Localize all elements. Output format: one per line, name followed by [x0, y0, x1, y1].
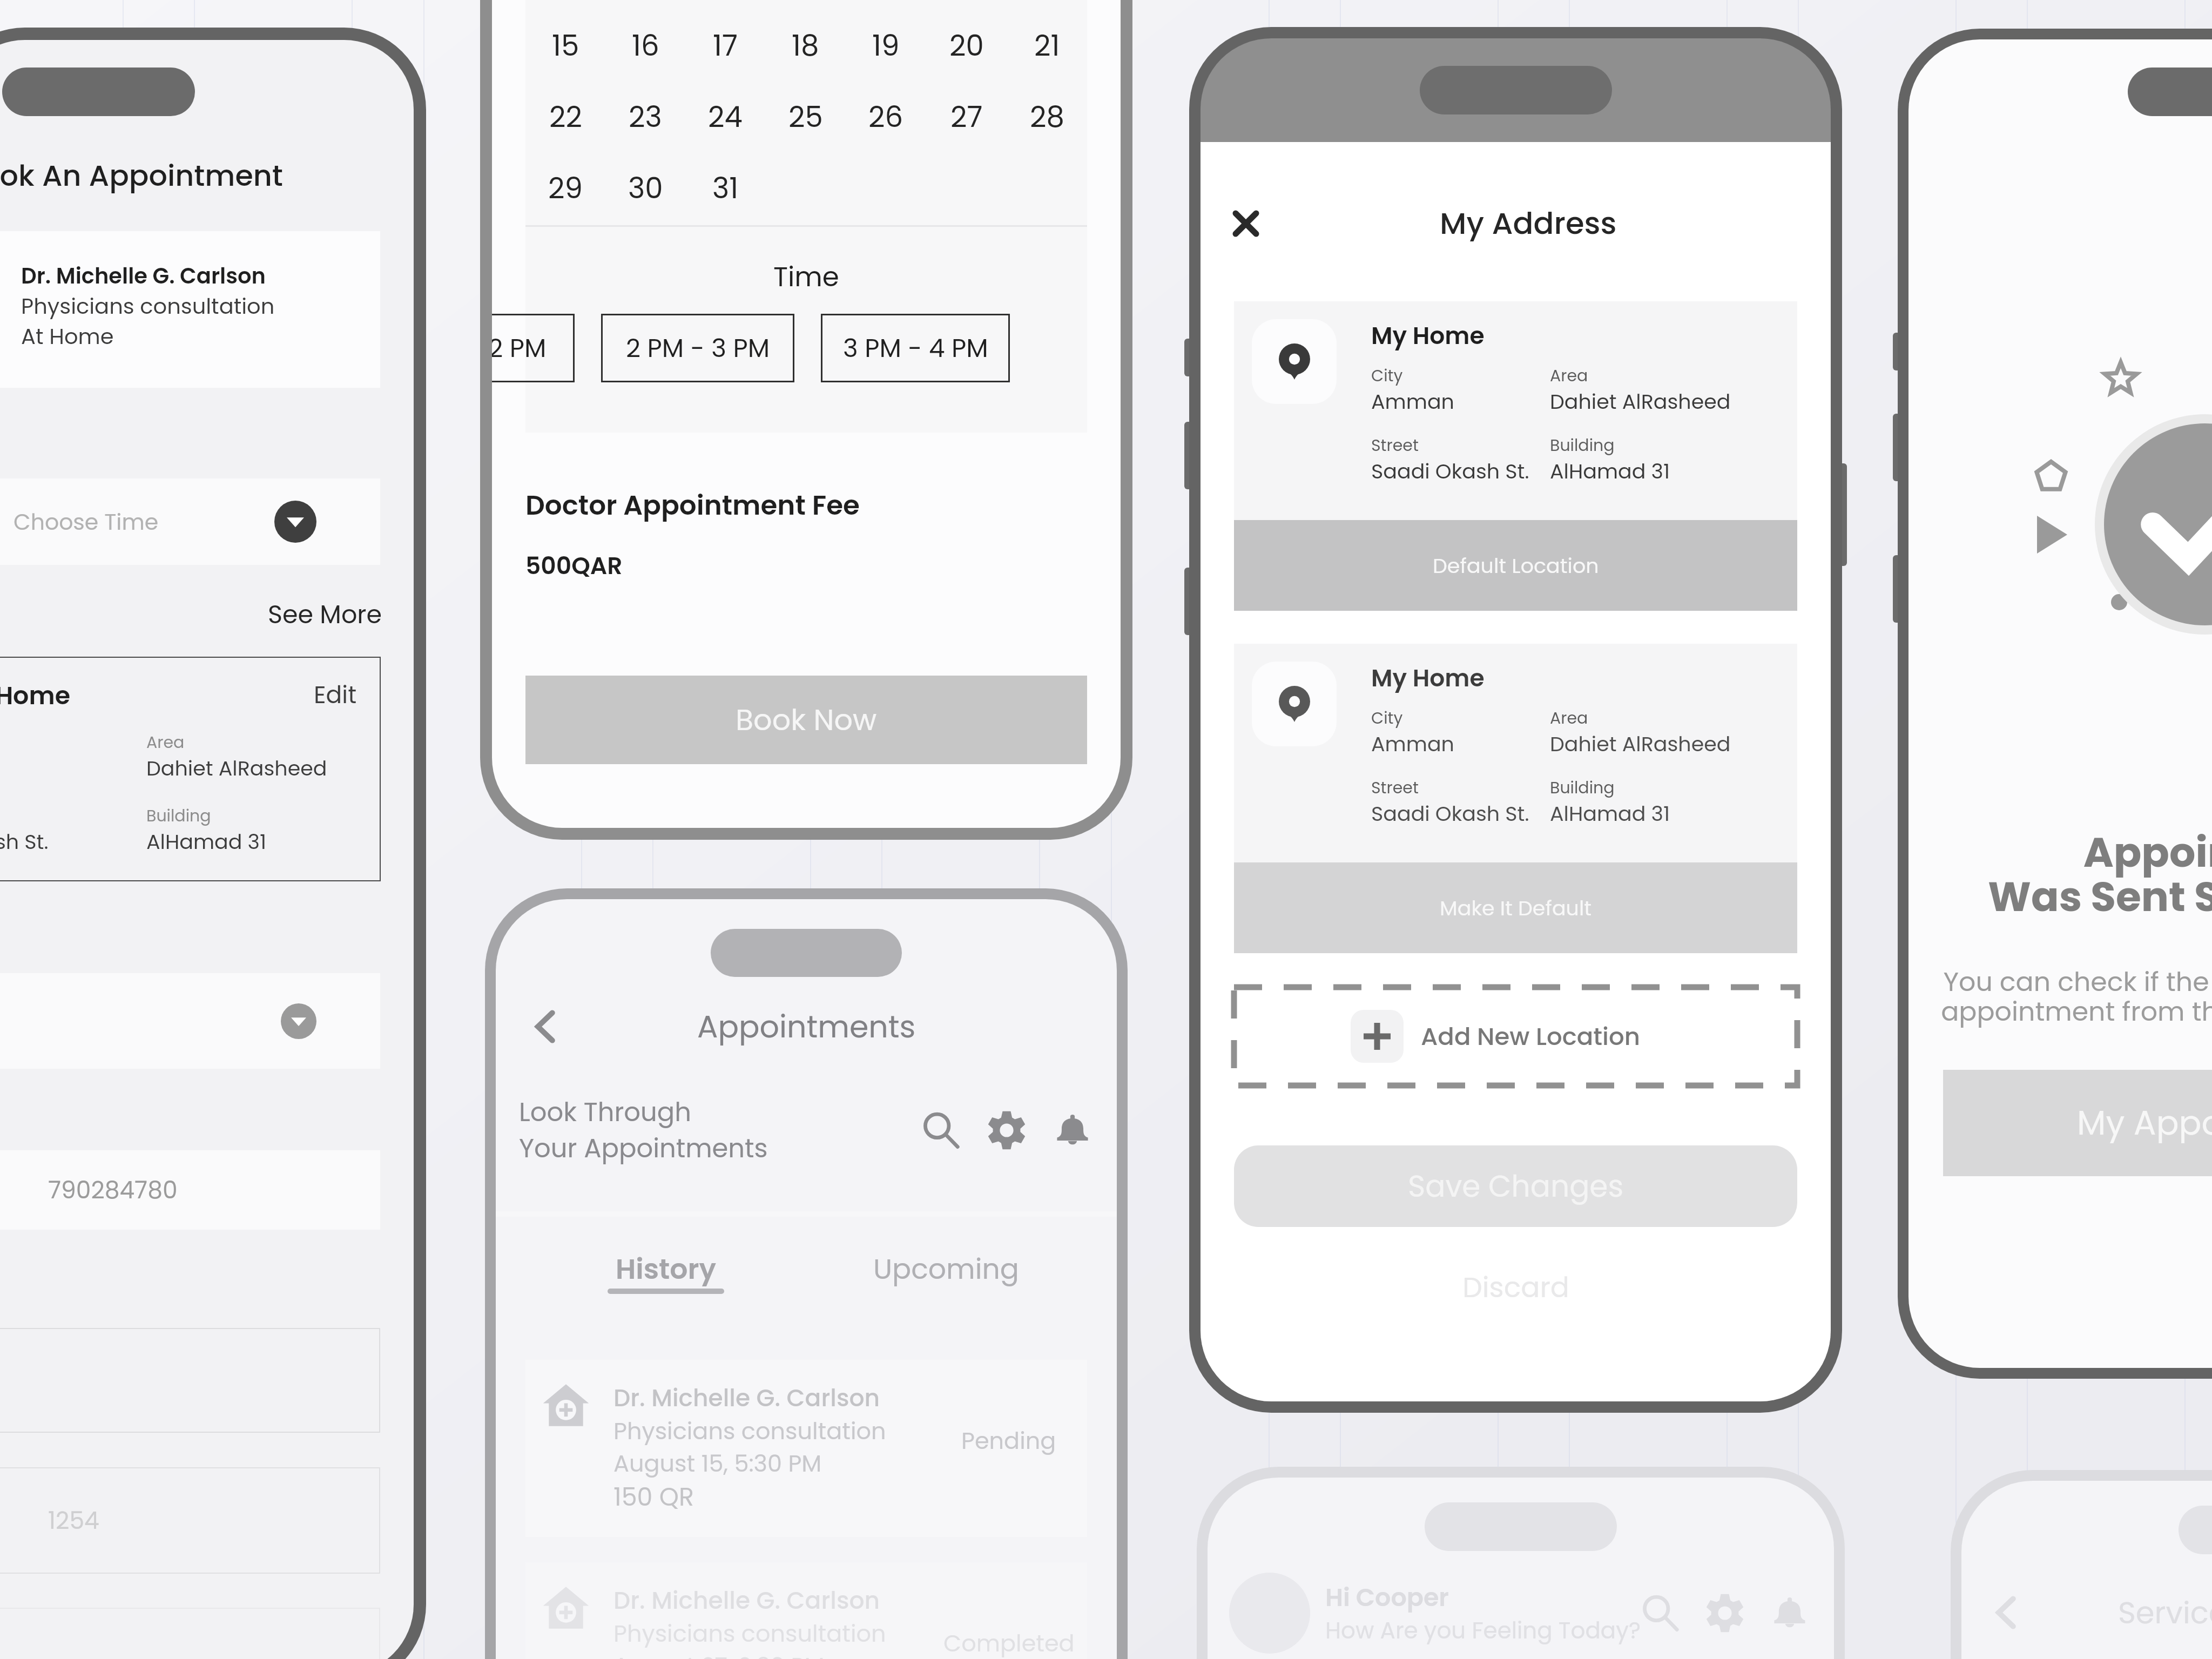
staticText: Area — [146, 731, 185, 754]
staticText: My Home — [1371, 662, 1485, 695]
staticText: 17 — [713, 25, 738, 65]
staticText: Upcoming — [873, 1249, 1019, 1289]
staticText: Save Changes — [1408, 1165, 1624, 1207]
button[interactable] — [0, 1328, 380, 1433]
staticText: Dr. Michelle G. Carlson — [613, 1584, 880, 1617]
staticText: My Address — [1440, 202, 1617, 244]
staticText: Physicians consultation — [613, 1617, 886, 1650]
staticText: Edit — [314, 678, 357, 712]
staticText: Book An Appointment — [1353, 138, 1679, 180]
staticText: 15 — [552, 25, 579, 65]
staticText: My Home — [1371, 319, 1485, 353]
staticText: 150 QR — [613, 1480, 694, 1514]
staticText: Hi Cooper — [1325, 1580, 1449, 1615]
staticText: City — [1371, 707, 1403, 730]
staticText: Dr. Michelle G. Carlson — [21, 261, 266, 291]
staticText: Appointments — [697, 1005, 916, 1048]
button[interactable]: 1254 — [0, 1467, 380, 1574]
button[interactable]: Expand — [274, 501, 316, 543]
button[interactable]: Default Location — [1234, 520, 1797, 611]
staticText: 790284780 — [48, 1174, 178, 1207]
other: Settings — [987, 1111, 1026, 1150]
staticText: Area — [1550, 707, 1588, 730]
staticText: 18 — [792, 25, 819, 65]
button[interactable]: Make It Default — [1234, 862, 1797, 953]
button[interactable]: History — [590, 1249, 741, 1294]
staticText: 19 — [872, 25, 900, 65]
button[interactable]: Close — [1222, 200, 1270, 247]
other: Notifications — [1771, 1595, 1808, 1631]
staticText: Physicians consultation — [21, 291, 275, 321]
button[interactable]: Discard — [1462, 1267, 1569, 1307]
staticText: 20 — [949, 25, 984, 65]
button[interactable]: My Home — [1234, 301, 1797, 520]
staticText: 26 — [868, 97, 903, 137]
staticText: At Home — [21, 321, 114, 352]
button[interactable]: Add New Location — [1234, 987, 1797, 1085]
staticText: 2 PM - 3 PM — [626, 331, 770, 366]
staticText: Area — [1550, 365, 1588, 387]
staticText: 24 — [708, 97, 743, 137]
button[interactable]: My Home — [0, 657, 381, 881]
staticText: City — [1371, 365, 1403, 387]
staticText: 21 — [1034, 25, 1060, 65]
button[interactable]: Upcoming — [860, 1249, 1033, 1289]
staticText: History — [616, 1249, 716, 1289]
staticText: August 15, 5:30 PM — [613, 1447, 822, 1480]
staticText: Amman — [1371, 730, 1454, 758]
staticText: AlHamad 31 — [1550, 457, 1670, 485]
staticText: Completed — [943, 1627, 1075, 1659]
staticText: 23 — [629, 97, 662, 137]
staticText: Dahiet AlRasheed — [1550, 387, 1731, 416]
button[interactable]: Book Now — [525, 676, 1087, 764]
button[interactable]: See More — [268, 597, 382, 632]
staticText: Building — [146, 805, 211, 827]
staticText: AlHamad 31 — [1550, 799, 1670, 828]
staticText: Appointment Was Sent Successfully — [1988, 824, 2212, 926]
other: Settings — [1705, 1594, 1744, 1633]
staticText: Doctor Appointment Fee — [525, 487, 860, 524]
button[interactable]: Save Changes — [1234, 1145, 1797, 1227]
staticText: 22 — [549, 97, 582, 137]
staticText: Your Appointments — [519, 1130, 768, 1166]
staticText: Street — [1371, 434, 1419, 457]
button[interactable]: Dr. Michelle G. Carlson — [525, 1360, 1087, 1537]
button[interactable]: 1 PM - 2 PM — [492, 314, 575, 382]
staticText: Default Location — [1433, 551, 1599, 580]
staticText: Book Now — [736, 699, 877, 740]
button[interactable]: Back — [524, 1005, 567, 1048]
staticText: Dahiet AlRasheed — [146, 754, 327, 783]
staticText: Physicians consultation — [613, 1415, 886, 1447]
button[interactable]: My Home — [1234, 644, 1797, 862]
button[interactable]: Choose Time — [0, 478, 380, 565]
staticText: Time — [773, 258, 839, 296]
staticText: 3 PM - 4 PM — [843, 331, 988, 366]
staticText: Saadi Okash St. — [1371, 799, 1529, 828]
staticText: My Appointments — [2077, 1100, 2212, 1147]
staticText: Dr. Michelle G. Carlson — [613, 1381, 880, 1415]
staticText: Saadi Okash St. — [1371, 457, 1529, 485]
button[interactable]: Expand — [281, 1003, 316, 1039]
button[interactable]: My Appointments — [1943, 1070, 2212, 1176]
other: Search — [922, 1112, 959, 1149]
other: Search — [1642, 1595, 1678, 1631]
staticText: Saadi Okash St. — [0, 827, 49, 856]
staticText: Choose Time — [14, 507, 159, 537]
staticText: 500QAR — [525, 549, 623, 583]
button[interactable]: 790284780 — [0, 1150, 380, 1230]
staticText: Dahiet AlRasheed — [1550, 730, 1731, 758]
button[interactable]: Dr. Michelle G. Carlson — [0, 231, 380, 388]
button[interactable]: 3 PM - 4 PM — [821, 314, 1010, 382]
staticText: 29 — [548, 168, 583, 208]
staticText: AlHamad 31 — [146, 827, 267, 856]
staticText: 30 — [628, 168, 663, 208]
staticText: Make It Default — [1440, 894, 1592, 922]
button[interactable]: Expand — [0, 973, 380, 1069]
button[interactable]: 2 PM - 3 PM — [601, 314, 794, 382]
staticText: Street — [1371, 777, 1419, 799]
button[interactable]: Dr. Michelle G. Carlson — [525, 1562, 1087, 1659]
staticText: My Home — [0, 678, 71, 713]
staticText: 27 — [950, 97, 983, 137]
staticText: Building — [1550, 434, 1615, 457]
